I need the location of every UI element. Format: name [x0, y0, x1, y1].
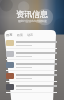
- button[interactable]: [6, 82, 57, 93]
- button[interactable]: [6, 38, 57, 49]
- button[interactable]: [6, 71, 57, 82]
- staticText: 动态: [27, 33, 33, 37]
- button[interactable]: [6, 49, 57, 60]
- staticText: 政策: [17, 33, 23, 37]
- staticText: 最新行业动态与政策解读: [18, 19, 47, 22]
- button[interactable]: [6, 60, 57, 71]
- staticText: 推荐: [6, 33, 13, 37]
- staticText: 资讯信息: [16, 9, 48, 19]
- button[interactable]: 推荐: [6, 32, 57, 38]
